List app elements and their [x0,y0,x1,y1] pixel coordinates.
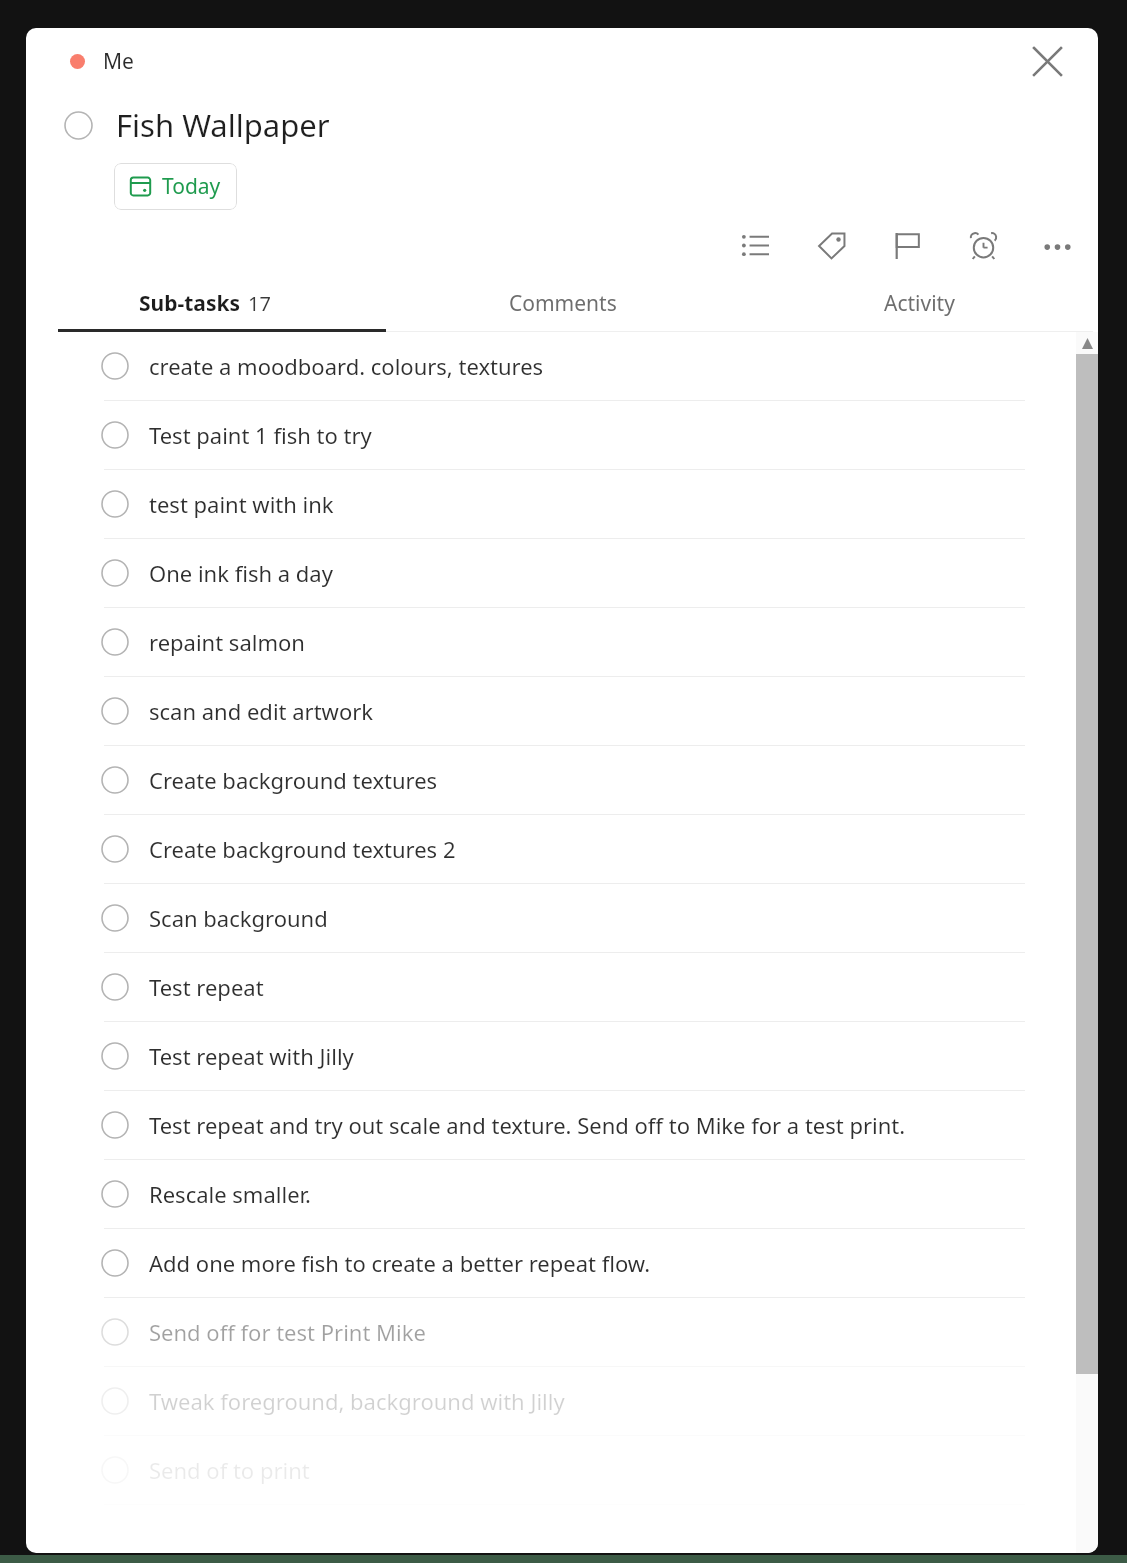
button[interactable]: Labels [808,222,854,268]
staticText: Test paint 1 fish to try [149,420,372,450]
button[interactable]: Scroll up [1076,332,1098,354]
staticText: Tweak foreground, background with Jilly [149,1386,565,1416]
staticText: Create background textures 2 [149,834,456,864]
button[interactable]: repaint salmon [26,608,1098,677]
staticText: One ink fish a day [149,558,333,588]
button[interactable]: create a moodboard. colours, textures [26,332,1098,401]
button[interactable]: Comments [384,274,741,332]
button[interactable]: Today [114,163,237,210]
button[interactable]: test paint with ink [26,470,1098,539]
button[interactable]: One ink fish a day [26,539,1098,608]
button[interactable]: Reminder [960,222,1006,268]
staticText: Test repeat and try out scale and textur… [149,1110,906,1140]
button[interactable]: Test paint 1 fish to try [26,401,1098,470]
button[interactable]: Me [70,47,134,76]
button[interactable]: Close [1021,35,1073,87]
button[interactable]: Activity [741,274,1098,332]
button[interactable]: Test repeat with Jilly [26,1022,1098,1091]
staticText: Comments [509,289,617,318]
staticText: create a moodboard. colours, textures [149,351,544,381]
button[interactable]: Fish Wallpaper [26,94,1098,156]
staticText: test paint with ink [149,489,334,519]
staticText: scan and edit artwork [149,696,374,726]
staticText: Create background textures [149,765,438,795]
button[interactable]: Scan background [26,884,1098,953]
button[interactable]: Create background textures [26,746,1098,815]
button[interactable]: Test repeat [26,953,1098,1022]
button[interactable]: Rescale smaller. [26,1160,1098,1229]
staticText: Sub-tasks [139,289,241,318]
button[interactable]: Test repeat and try out scale and textur… [26,1091,1098,1160]
button[interactable]: Priority flag [884,222,930,268]
staticText: Test repeat with Jilly [149,1041,354,1071]
staticText: Me [103,47,134,76]
staticText: Test repeat [149,972,264,1002]
staticText: Send of to print [149,1455,310,1485]
staticText: repaint salmon [149,627,305,657]
button[interactable]: scan and edit artwork [26,677,1098,746]
staticText: 17 [248,290,271,317]
staticText: Send off for test Print Mike [149,1317,426,1347]
button[interactable]: Tweak foreground, background with Jilly [26,1367,1098,1436]
staticText: Activity [884,289,955,318]
staticText: Fish Wallpaper [116,104,330,146]
button[interactable]: Send off for test Print Mike [26,1298,1098,1367]
staticText: Add one more fish to create a better rep… [149,1248,651,1278]
button[interactable]: Sub-tasks list [732,222,778,268]
button[interactable]: More options [1034,222,1080,268]
button[interactable]: Create background textures 2 [26,815,1098,884]
button[interactable]: Add one more fish to create a better rep… [26,1229,1098,1298]
button[interactable]: Sub-tasks [26,274,384,332]
staticText: Rescale smaller. [149,1179,312,1209]
staticText: Scan background [149,903,328,933]
staticText: Today [162,172,221,201]
